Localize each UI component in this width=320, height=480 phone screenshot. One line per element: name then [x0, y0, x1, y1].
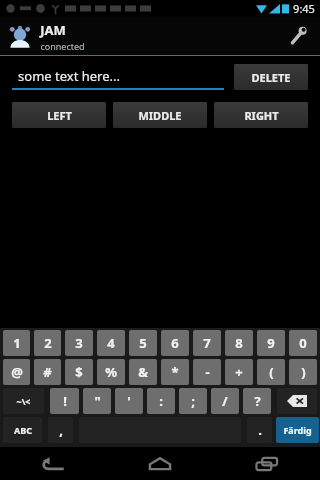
staticText: 7: [203, 334, 211, 352]
button[interactable]: RIGHT: [214, 102, 308, 128]
staticText: ;: [191, 392, 195, 410]
staticText: .: [258, 421, 262, 439]
button[interactable]: Back: [0, 447, 106, 480]
button[interactable]: 7: [193, 330, 221, 356]
staticText: 5: [139, 334, 147, 352]
button[interactable]: +: [225, 359, 253, 385]
button[interactable]: .: [247, 417, 272, 443]
button[interactable]: -: [193, 359, 221, 385]
button[interactable]: 8: [225, 330, 253, 356]
staticText: ,: [59, 421, 63, 439]
staticText: ): [301, 363, 306, 381]
button[interactable]: ': [115, 388, 143, 414]
button[interactable]: Recent apps: [213, 447, 320, 480]
button[interactable]: 9: [257, 330, 285, 356]
button[interactable]: #: [34, 359, 61, 385]
staticText: 8: [235, 334, 243, 352]
staticText: +: [235, 363, 243, 381]
staticText: *: [171, 363, 179, 381]
staticText: 6: [171, 334, 179, 352]
staticText: :: [159, 392, 163, 410]
staticText: ~\<: [16, 395, 31, 407]
staticText: some text here...: [18, 67, 120, 85]
button[interactable]: MIDDLE: [113, 102, 207, 128]
button[interactable]: ): [289, 359, 317, 385]
button[interactable]: Settings: [276, 17, 320, 55]
staticText: ABC: [14, 424, 32, 436]
staticText: /: [222, 392, 228, 410]
staticText: 2: [44, 334, 52, 352]
button[interactable]: ~\<: [3, 388, 44, 414]
staticText: #: [43, 363, 52, 381]
staticText: 1: [13, 334, 21, 352]
staticText: 3: [75, 334, 83, 352]
button[interactable]: 1: [3, 330, 30, 356]
staticText: 4: [107, 334, 115, 352]
staticText: 9: [267, 334, 275, 352]
staticText: RIGHT: [244, 108, 279, 123]
staticText: 9:45: [293, 1, 315, 16]
staticText: @: [11, 363, 23, 381]
button[interactable]: (: [257, 359, 285, 385]
button[interactable]: Backspace: [277, 388, 317, 414]
staticText: MIDDLE: [138, 108, 182, 123]
staticText: Färdig: [283, 424, 312, 436]
button[interactable]: :: [147, 388, 175, 414]
button[interactable]: 4: [97, 330, 125, 356]
button[interactable]: LEFT: [12, 102, 106, 128]
staticText: ': [127, 392, 131, 410]
staticText: LEFT: [47, 108, 72, 123]
staticText: !: [63, 392, 67, 410]
button[interactable]: 2: [34, 330, 61, 356]
button[interactable]: !: [50, 388, 79, 414]
button[interactable]: %: [97, 359, 125, 385]
button[interactable]: &: [129, 359, 157, 385]
staticText: JAM: [40, 21, 66, 39]
staticText: %: [105, 363, 117, 381]
staticText: (: [269, 363, 274, 381]
button[interactable]: 0: [289, 330, 317, 356]
button[interactable]: ABC: [3, 417, 42, 443]
staticText: -: [205, 363, 210, 381]
button[interactable]: 6: [161, 330, 189, 356]
button[interactable]: ?: [243, 388, 271, 414]
staticText: 0: [299, 334, 307, 352]
button[interactable]: ": [83, 388, 111, 414]
button[interactable]: 3: [65, 330, 93, 356]
staticText: ?: [254, 392, 261, 410]
button[interactable]: @: [3, 359, 30, 385]
button[interactable]: some text here...: [12, 64, 224, 90]
button[interactable]: ;: [179, 388, 207, 414]
staticText: $: [75, 363, 83, 381]
button[interactable]: ,: [48, 417, 73, 443]
button[interactable]: /: [211, 388, 239, 414]
button[interactable]: DELETE: [234, 64, 308, 90]
staticText: connected: [40, 40, 85, 52]
staticText: &: [138, 363, 148, 381]
staticText: DELETE: [251, 70, 291, 85]
staticText: ": [94, 392, 101, 410]
button[interactable]: *: [161, 359, 189, 385]
button[interactable]: $: [65, 359, 93, 385]
button[interactable]: 5: [129, 330, 157, 356]
button[interactable]: Färdig: [276, 417, 319, 443]
button[interactable]: Home: [106, 447, 213, 480]
